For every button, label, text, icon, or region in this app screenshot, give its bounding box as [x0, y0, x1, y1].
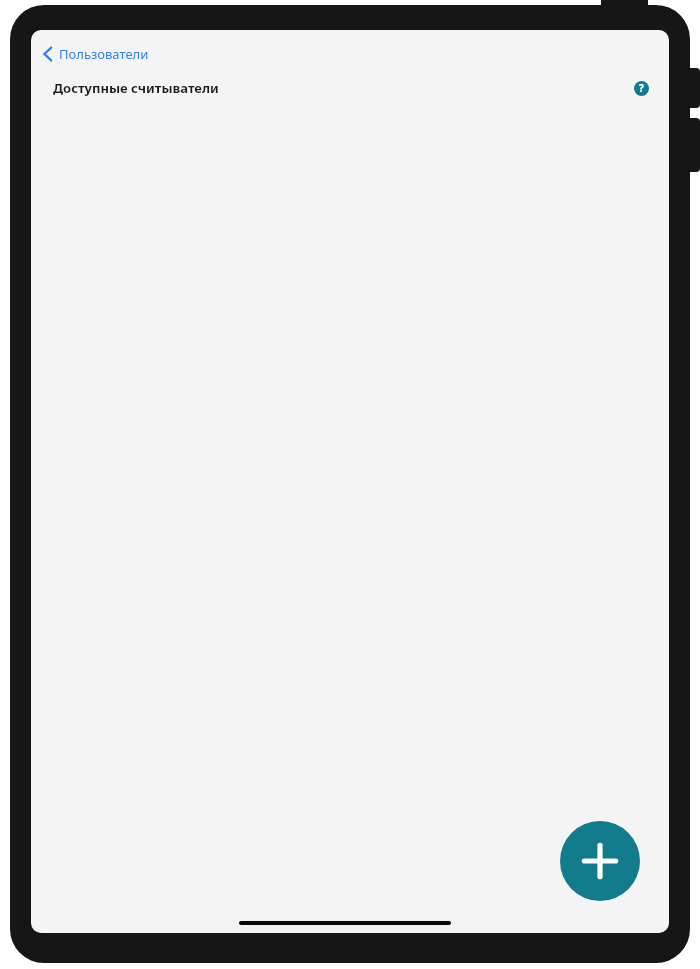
button[interactable]: Пользователи: [37, 42, 155, 66]
staticText: Пользователи: [59, 45, 149, 63]
button[interactable]: Help: [631, 78, 651, 98]
staticText: Доступные считыватели: [53, 79, 631, 97]
button[interactable]: Add: [560, 821, 640, 901]
staticText: ?: [639, 81, 644, 95]
